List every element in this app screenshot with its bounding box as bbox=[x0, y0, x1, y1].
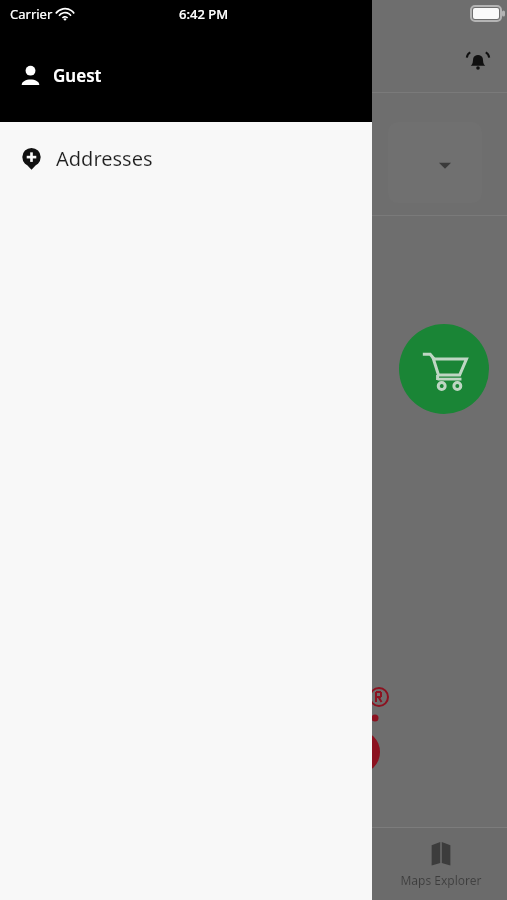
button[interactable]: Maps Explorer bbox=[374, 828, 507, 900]
staticText: 6:42 PM bbox=[179, 5, 229, 23]
button[interactable]: Guest bbox=[0, 58, 372, 92]
staticText: Maps Explorer bbox=[400, 872, 482, 888]
button[interactable]: Notifications bbox=[459, 42, 497, 80]
staticText: Addresses bbox=[56, 145, 153, 172]
button[interactable] bbox=[388, 122, 482, 203]
staticText: Carrier bbox=[10, 5, 53, 23]
button[interactable]: Addresses bbox=[0, 122, 372, 194]
staticText: Guest bbox=[53, 64, 102, 87]
button[interactable]: Cart bbox=[399, 324, 489, 414]
